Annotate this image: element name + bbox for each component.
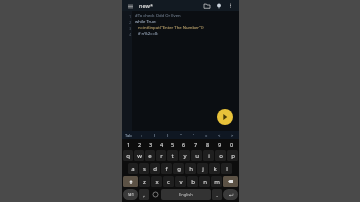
button[interactable]: 8 [202, 140, 214, 149]
button[interactable]: z [139, 176, 150, 187]
button[interactable]: d [150, 163, 160, 174]
button[interactable]: r [156, 150, 166, 161]
button[interactable]: 4 [156, 140, 167, 149]
staticText: l [226, 165, 228, 173]
button[interactable]: j [197, 163, 208, 174]
staticText: new* [139, 2, 153, 9]
button[interactable]: English [161, 189, 211, 200]
button[interactable]: v [175, 176, 186, 187]
button[interactable]: n [199, 176, 210, 187]
staticText: = [205, 133, 208, 138]
button[interactable]: q [123, 150, 133, 161]
staticText: 3 [149, 141, 153, 148]
staticText: a [131, 165, 135, 173]
button[interactable]: , [139, 189, 149, 200]
staticText: 9 [218, 141, 222, 148]
staticText: English [179, 192, 193, 197]
staticText: z [143, 178, 146, 186]
button[interactable]: k [209, 163, 220, 174]
staticText: r [160, 152, 163, 160]
button[interactable]: !#1 [123, 189, 138, 200]
staticText: b [191, 178, 195, 186]
staticText: g [177, 165, 181, 173]
button[interactable]: y [179, 150, 190, 161]
staticText: 7 [194, 141, 198, 148]
staticText: 0 [230, 141, 234, 148]
staticText: y [183, 152, 187, 160]
staticText: 1 [129, 14, 132, 19]
staticText: , [143, 191, 145, 199]
button[interactable]: Open file [202, 1, 211, 10]
staticText: s [143, 165, 146, 173]
staticText: x [155, 178, 159, 186]
button[interactable]: e [145, 150, 155, 161]
staticText: 4 [160, 141, 164, 148]
button[interactable]: Hints [214, 1, 223, 10]
staticText: m [214, 178, 220, 186]
staticText: !#1 [128, 192, 134, 197]
staticText: 5 [171, 141, 175, 148]
button[interactable]: 1 [123, 140, 134, 149]
button[interactable]: 5 [167, 140, 178, 149]
button[interactable]: u [191, 150, 202, 161]
button[interactable]: 7 [190, 140, 202, 149]
button[interactable]: o [215, 150, 226, 161]
button[interactable]: g [173, 163, 184, 174]
button[interactable]: 3 [145, 140, 156, 149]
staticText: t [171, 152, 174, 160]
staticText: < [218, 133, 221, 138]
button[interactable]: i [203, 150, 214, 161]
button[interactable]: b [187, 176, 198, 187]
staticText: c [167, 178, 170, 186]
button[interactable]: Tab [122, 131, 135, 139]
button[interactable]: Shift [123, 176, 138, 187]
button[interactable]: 2 [134, 140, 145, 149]
button[interactable]: Emoji [150, 189, 160, 200]
button[interactable]: Backspace [223, 176, 238, 187]
button[interactable]: Menu [126, 2, 134, 10]
button[interactable]: f [161, 163, 172, 174]
staticText: 6 [182, 141, 186, 148]
button[interactable]: > [226, 131, 239, 139]
button[interactable]: = [200, 131, 213, 139]
staticText: o [219, 152, 223, 160]
button[interactable]: t [167, 150, 178, 161]
button[interactable]: 9 [214, 140, 226, 149]
button[interactable]: l [221, 163, 232, 174]
button[interactable]: c [163, 176, 174, 187]
staticText: : [141, 133, 143, 138]
staticText: . [216, 191, 218, 199]
staticText: v [179, 178, 183, 186]
staticText: " [180, 133, 182, 138]
button[interactable]: p [227, 150, 238, 161]
staticText: 8 [206, 141, 210, 148]
button[interactable]: h [185, 163, 196, 174]
staticText: 2 [138, 141, 142, 148]
staticText: n [203, 178, 207, 186]
staticText: Tab [125, 133, 132, 138]
button[interactable]: ) [161, 131, 174, 139]
button[interactable]: ' [187, 131, 200, 139]
button[interactable]: < [213, 131, 226, 139]
staticText: 4 [129, 32, 132, 37]
staticText: 3 [129, 26, 132, 31]
button[interactable]: ( [148, 131, 161, 139]
button[interactable]: s [139, 163, 149, 174]
button[interactable]: " [174, 131, 187, 139]
staticText: #To check Odd Or Even [135, 13, 181, 19]
staticText: while True: [135, 19, 157, 25]
button[interactable]: . [212, 189, 222, 200]
button[interactable]: w [134, 150, 144, 161]
button[interactable]: Run [217, 109, 233, 125]
button[interactable]: More options [226, 1, 235, 10]
staticText: if n%2==0: [138, 31, 159, 37]
button[interactable]: Enter [223, 189, 238, 200]
button[interactable]: : [135, 131, 148, 139]
staticText: > [231, 133, 234, 138]
button[interactable]: 6 [178, 140, 190, 149]
button[interactable]: 0 [226, 140, 238, 149]
staticText: e [148, 152, 152, 160]
button[interactable]: a [128, 163, 138, 174]
button[interactable]: m [211, 176, 222, 187]
button[interactable]: x [151, 176, 162, 187]
